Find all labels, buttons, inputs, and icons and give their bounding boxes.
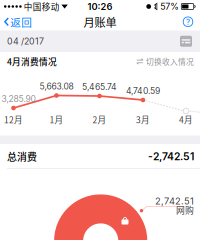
staticText: 总消费 xyxy=(7,149,37,164)
staticText: 2月 xyxy=(92,113,106,126)
staticText: 4,740.59 xyxy=(126,86,160,96)
staticText: 5,465.74 xyxy=(82,82,117,92)
button[interactable]: 返回 xyxy=(0,13,38,31)
staticText: 12月 xyxy=(4,113,23,126)
staticText: 网购 xyxy=(176,204,194,216)
staticText: 04 /2017 xyxy=(7,36,44,46)
staticText: 返回 xyxy=(10,14,32,29)
button[interactable]: 选择月份 xyxy=(180,32,192,51)
staticText: 10:26 xyxy=(87,1,112,12)
staticText: 中国移动 xyxy=(22,0,60,13)
staticText: 5,663.08 xyxy=(39,81,73,92)
staticText: -2,742.51 xyxy=(148,150,194,163)
staticText: 3,285.90 xyxy=(1,94,35,104)
staticText: ? xyxy=(186,17,190,27)
button[interactable]: 帮助 xyxy=(179,13,200,31)
staticText: 57% xyxy=(160,1,179,12)
staticText: 切换收入情况 xyxy=(146,56,194,67)
staticText: 月账单 xyxy=(83,14,116,30)
staticText: 4月消费情况 xyxy=(7,55,57,68)
button[interactable]: 切换收入情况 xyxy=(136,52,194,71)
staticText: 3月 xyxy=(136,113,150,126)
staticText: 2,742.51 xyxy=(155,195,194,207)
staticText: 4月 xyxy=(179,113,193,126)
staticText: 1月 xyxy=(49,113,63,126)
